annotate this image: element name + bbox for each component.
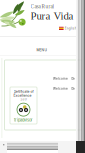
staticText: advisor <box>20 118 33 122</box>
staticText: Casa Rural <box>30 3 53 9</box>
staticText: Certificate of Excellence <box>13 89 33 98</box>
staticText: 2017 <box>20 98 26 101</box>
staticText: Welcome <box>53 87 68 90</box>
button[interactable]: MENU <box>3 44 80 56</box>
staticText: Bienvenido <box>71 87 85 90</box>
staticText: trip <box>14 118 20 122</box>
staticText: Pura Vida <box>30 10 73 22</box>
staticText: MENU <box>36 48 46 52</box>
staticText: English <box>65 27 77 30</box>
button[interactable]: English <box>58 26 78 31</box>
staticText: Welcome <box>53 77 68 80</box>
staticText: Bienvenido <box>71 77 85 80</box>
